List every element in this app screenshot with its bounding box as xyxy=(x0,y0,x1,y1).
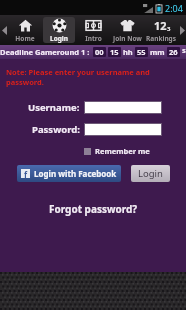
staticText: Username: xyxy=(28,101,80,114)
button[interactable]: Scroll right xyxy=(178,15,186,45)
button[interactable]: Login xyxy=(131,165,170,182)
staticText: Rankings xyxy=(146,34,176,43)
staticText: Note: Please enter your username and pas… xyxy=(6,67,186,87)
staticText: Forgot password? xyxy=(49,202,138,216)
staticText: Remember me xyxy=(95,146,150,156)
staticText: Deadline Gameround 1 : xyxy=(0,47,90,57)
staticText: 3 xyxy=(167,25,169,33)
staticText: hh xyxy=(123,47,133,57)
button[interactable]: Home xyxy=(9,17,41,43)
button[interactable]: f xyxy=(17,165,121,182)
staticText: mm xyxy=(150,47,165,57)
button[interactable]: Login xyxy=(43,17,75,43)
staticText: Login xyxy=(138,167,163,180)
button[interactable]: Join Now xyxy=(111,17,143,43)
staticText: 26 xyxy=(169,47,178,57)
staticText: Intro xyxy=(85,34,102,43)
staticText: 15 xyxy=(110,47,119,57)
button[interactable]: Forgot password? xyxy=(45,198,142,220)
staticText: 00 xyxy=(95,47,104,57)
button[interactable]: 12 xyxy=(145,17,177,43)
staticText: f xyxy=(24,169,28,178)
staticText: Login with Facebook xyxy=(34,168,117,179)
staticText: 2:04 xyxy=(165,2,183,14)
button[interactable]: Remember me xyxy=(84,146,150,156)
staticText: Join Now xyxy=(113,34,142,43)
staticText: Login xyxy=(50,34,68,43)
staticText: Home xyxy=(15,34,35,43)
staticText: 12 xyxy=(154,18,167,33)
button[interactable]: Scroll left xyxy=(0,15,8,45)
staticText: ss xyxy=(182,45,186,59)
button[interactable]: Intro xyxy=(77,17,109,43)
staticText: Password: xyxy=(32,123,80,136)
staticText: 55 xyxy=(137,47,146,57)
